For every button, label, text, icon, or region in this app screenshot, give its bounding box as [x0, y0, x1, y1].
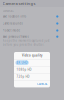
button[interactable]: CANCEL	[37, 82, 50, 86]
staticText: Save previous frames	[2, 35, 28, 38]
staticText: Video quality	[22, 54, 42, 57]
staticText: GENERAL	[2, 9, 13, 13]
staticText: 720p HD	[17, 75, 30, 78]
button[interactable]: 720p HD	[14, 73, 50, 80]
staticText: 4K UHD	[17, 61, 28, 64]
staticText: CANCEL	[37, 82, 47, 86]
button[interactable]: Save location info	[0, 13, 64, 20]
staticText: Save location info	[2, 15, 26, 18]
staticText: Camera sounds	[2, 22, 22, 25]
staticText: Camera settings	[2, 1, 35, 6]
button[interactable]: 4K UHD	[14, 59, 50, 66]
button[interactable]: 1080p HD	[14, 66, 50, 73]
staticText: Keeps the moments captured just	[2, 39, 49, 43]
staticText: 1080p HD	[17, 68, 32, 71]
button[interactable]: Save previous frames	[0, 34, 64, 46]
staticText: before you press the shutter.	[2, 43, 44, 46]
button[interactable]: Camera sounds	[0, 20, 64, 27]
button[interactable]: Pocket mode	[0, 27, 64, 34]
staticText: Pocket mode	[2, 29, 20, 32]
